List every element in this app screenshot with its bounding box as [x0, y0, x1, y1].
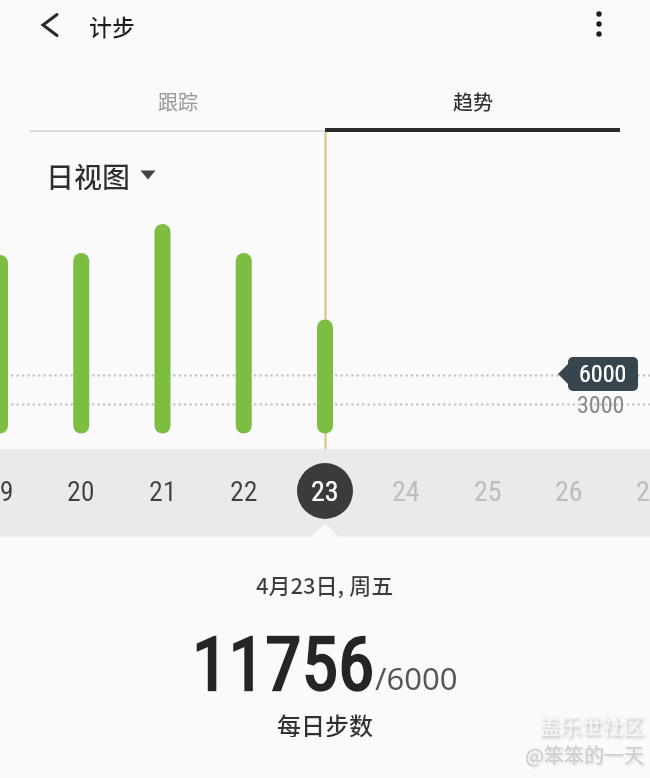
staticText: 计步 [89, 9, 135, 41]
staticText: /6000 [375, 657, 458, 699]
staticText: 25 [474, 475, 502, 507]
staticText: 19 [0, 475, 14, 507]
button[interactable]: 23 [285, 475, 365, 507]
staticText: 每日步数 [277, 707, 373, 737]
staticText: 23 [311, 475, 339, 507]
staticText: 27 [636, 475, 650, 507]
staticText: 26 [555, 475, 583, 507]
button[interactable]: 26 [529, 475, 609, 507]
staticText: 盖乐世社区 [539, 710, 644, 740]
staticText: 24 [392, 475, 420, 507]
staticText: 日视图 [46, 156, 131, 190]
staticText: 20 [67, 475, 95, 507]
staticText: @笨笨的一天 [525, 740, 644, 769]
staticText: 3000 [577, 391, 625, 419]
button[interactable] [28, 3, 72, 47]
staticText: 22 [230, 475, 258, 507]
button[interactable]: 25 [448, 475, 528, 507]
staticText: 11756 [192, 621, 375, 708]
button[interactable]: 22 [204, 475, 284, 507]
button[interactable]: 24 [366, 475, 446, 507]
button[interactable] [577, 2, 621, 46]
button[interactable]: 27 [610, 475, 650, 507]
staticText: 4月23日, 周五 [256, 568, 394, 598]
button[interactable]: 日视图 [46, 156, 156, 190]
button[interactable]: 跟踪 [30, 80, 325, 122]
button[interactable]: 19 [0, 475, 40, 507]
staticText: 6000 [579, 360, 627, 388]
button[interactable]: 趋势 [325, 80, 620, 122]
button[interactable]: 21 [123, 475, 203, 507]
staticText: 跟踪 [158, 87, 198, 116]
staticText: 21 [149, 475, 177, 507]
staticText: 趋势 [453, 87, 493, 116]
button[interactable]: 20 [41, 475, 121, 507]
